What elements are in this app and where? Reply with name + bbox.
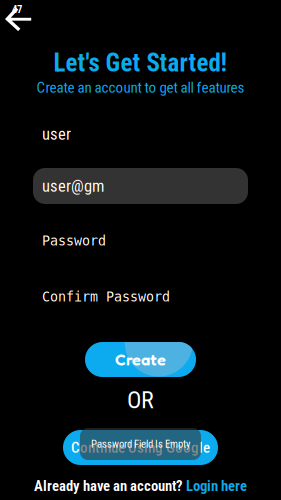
button[interactable]: user@gm [33, 168, 248, 204]
staticText: Continue Using Google [71, 439, 210, 456]
staticText: Create an account to get all features [36, 79, 244, 96]
staticText: Already have an account? [34, 477, 183, 495]
staticText: Confirm Password [42, 289, 170, 304]
button[interactable]: Create [85, 342, 196, 377]
button[interactable]: Already have an account? [0, 477, 281, 495]
staticText: Password [42, 233, 106, 248]
button[interactable]: Confirm Password [33, 279, 248, 315]
staticText: Password Field Is Empty [91, 438, 190, 450]
staticText: Let's Get Started! [53, 48, 227, 78]
staticText: OR [127, 386, 154, 414]
staticText: user [42, 124, 71, 144]
staticText: user@gm [42, 176, 104, 196]
staticText: Login here [186, 477, 247, 495]
staticText: 47 [12, 3, 22, 15]
button[interactable]: Continue Using Google [63, 430, 218, 465]
button[interactable]: Password [33, 223, 248, 259]
button[interactable]: user [33, 116, 248, 152]
staticText: Create [115, 350, 166, 369]
button[interactable]: Back [0, 0, 42, 36]
